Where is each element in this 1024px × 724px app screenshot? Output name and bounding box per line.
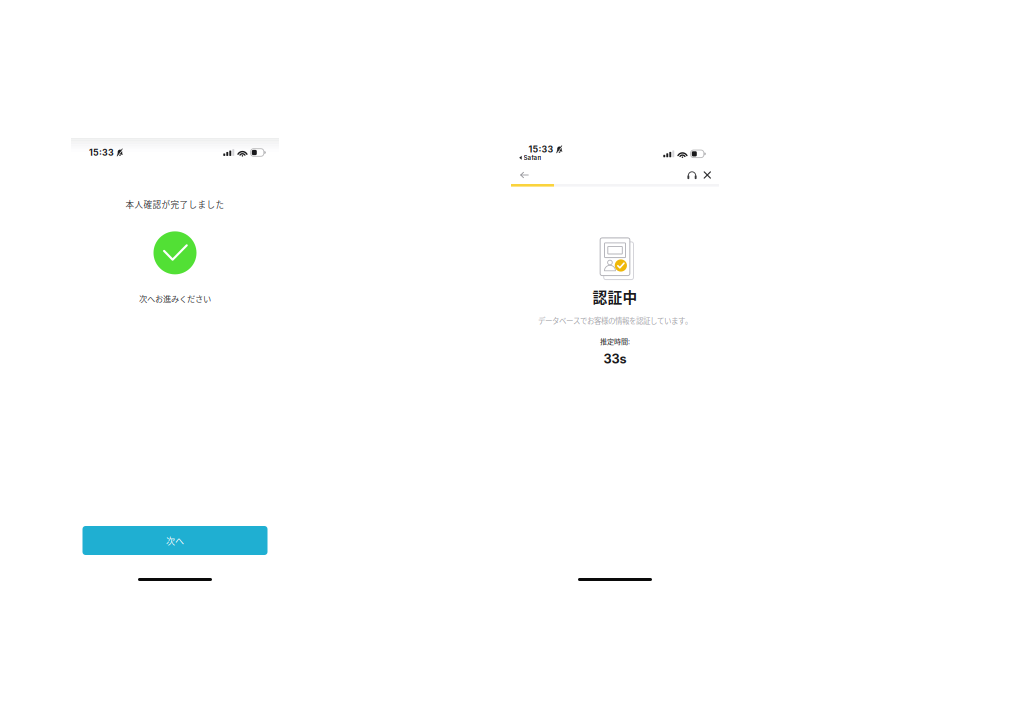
staticText: 次へ xyxy=(166,534,184,547)
staticText: 33s xyxy=(603,351,626,366)
staticText: 推定時間: xyxy=(600,336,630,346)
staticText: 認証中 xyxy=(592,286,637,307)
button[interactable]: 次へ xyxy=(82,526,267,555)
staticText: 本人確認が完了しました xyxy=(125,198,224,210)
button[interactable]: Back xyxy=(516,168,533,182)
staticText: 15:33 xyxy=(89,147,114,158)
staticText: Safari xyxy=(523,154,541,161)
staticText: データベースでお客様の情報を認証しています。 xyxy=(538,315,692,326)
staticText: 15:33 xyxy=(528,144,553,155)
staticText: 次へお進みください xyxy=(139,292,211,304)
button[interactable]: Close xyxy=(700,167,715,183)
button[interactable]: Support xyxy=(683,167,701,183)
